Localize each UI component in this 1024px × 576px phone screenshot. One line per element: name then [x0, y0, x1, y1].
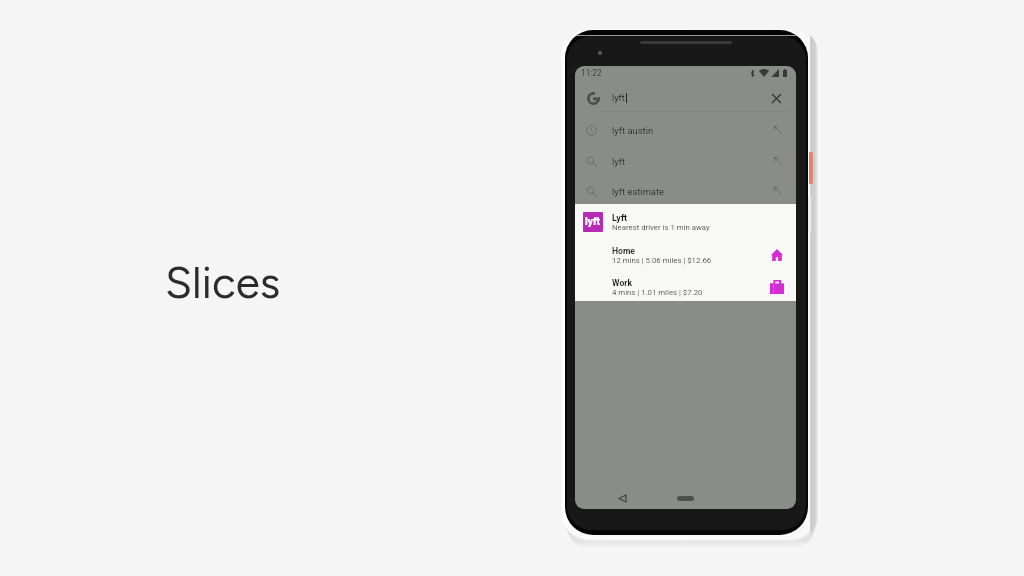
- staticText: Work: [612, 278, 632, 288]
- button[interactable]: Work: [575, 269, 796, 299]
- staticText: Home: [612, 246, 636, 256]
- button[interactable]: lyft: [575, 85, 796, 112]
- button[interactable]: Clear search: [765, 87, 787, 109]
- button[interactable]: Insert lyft austin: [770, 122, 786, 138]
- button[interactable]: Home: [575, 237, 796, 267]
- button[interactable]: Back: [615, 491, 629, 505]
- staticText: lyft: [585, 216, 601, 228]
- button[interactable]: Insert lyft estimate: [770, 183, 786, 199]
- button[interactable]: lyft: [575, 204, 796, 237]
- button[interactable]: Home: [677, 496, 694, 501]
- staticText: 11:22: [581, 68, 602, 78]
- button[interactable]: lyft austin: [575, 116, 796, 144]
- staticText: lyft austin: [612, 125, 654, 136]
- button[interactable]: lyft estimate: [575, 177, 796, 205]
- staticText: lyft estimate: [612, 186, 665, 197]
- staticText: Nearest driver is 1 min away: [612, 223, 710, 232]
- staticText: Lyft: [612, 213, 628, 224]
- staticText: 12 mins | 5.06 miles | $12.66: [612, 256, 712, 265]
- staticText: lyft: [612, 156, 626, 167]
- staticText: lyft: [612, 93, 625, 104]
- staticText: Slices: [165, 256, 281, 309]
- staticText: 4 mins | 1.01 miles | $7.20: [612, 288, 703, 297]
- button[interactable]: Insert lyft: [770, 153, 786, 169]
- button[interactable]: lyft: [575, 147, 796, 175]
